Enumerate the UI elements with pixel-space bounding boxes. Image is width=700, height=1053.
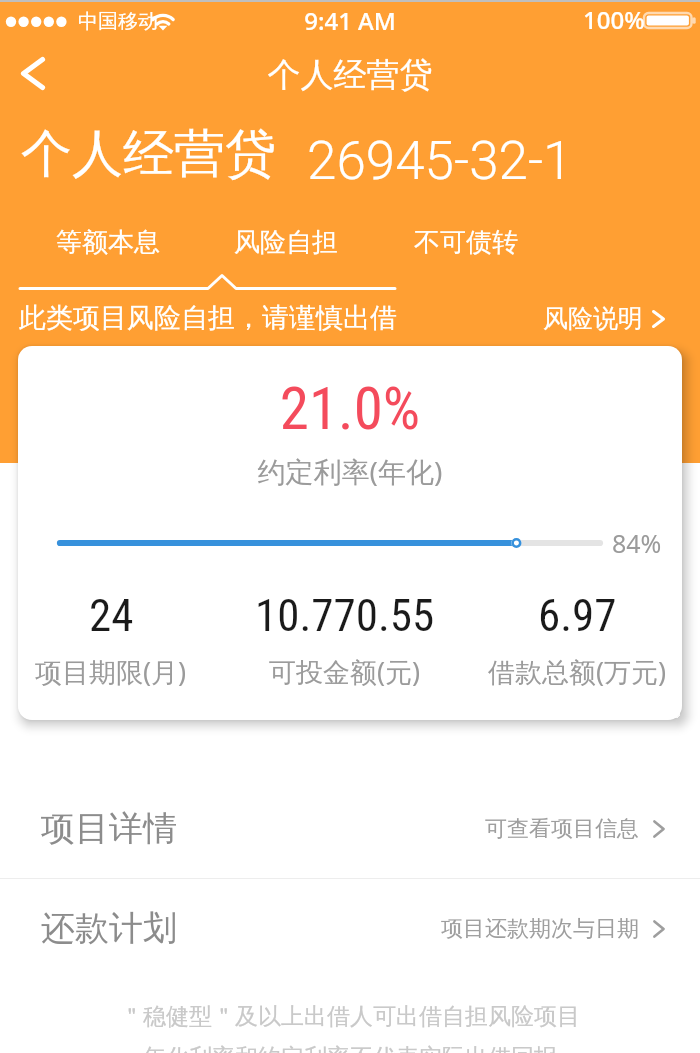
- staticText: 个人经营贷: [21, 122, 276, 186]
- staticText: 100%: [583, 3, 645, 36]
- staticText: 24: [89, 589, 134, 642]
- staticText: 中国移动: [78, 9, 158, 34]
- button[interactable]: 等额本息: [38, 216, 178, 268]
- staticText: 此类项目风险自担，请谨慎出借: [19, 301, 397, 335]
- staticText: 等额本息: [56, 226, 160, 259]
- staticText: 风险说明: [543, 303, 643, 334]
- staticText: 约定利率(年化): [0, 452, 700, 490]
- staticText: 21.0%: [0, 374, 700, 443]
- button[interactable]: 风险自担: [216, 216, 356, 268]
- button[interactable]: 风险说明: [531, 297, 677, 340]
- staticText: 还款计划: [41, 907, 177, 950]
- button[interactable]: 不可债转: [396, 216, 536, 268]
- staticText: 不可债转: [414, 226, 518, 259]
- staticText: ＂稳健型＂及以上出借人可出借自担风险项目: [0, 1002, 700, 1031]
- staticText: 9:41 AM: [0, 4, 700, 37]
- staticText: 借款总额(万元): [488, 653, 667, 690]
- staticText: 可查看项目信息: [485, 815, 639, 843]
- staticText: 风险自担: [234, 226, 338, 259]
- staticText: 84%: [612, 526, 662, 560]
- staticText: 个人经营贷: [0, 54, 700, 96]
- button[interactable]: 项目详情: [0, 779, 700, 878]
- staticText: 26945-32-1: [307, 130, 573, 192]
- staticText: 项目还款期次与日期: [441, 915, 639, 943]
- staticText: 项目期限(月): [35, 653, 187, 690]
- staticText: 6.97: [538, 589, 617, 642]
- button[interactable]: 还款计划: [0, 879, 700, 978]
- staticText: 可投金额(元): [269, 653, 421, 690]
- staticText: 项目详情: [41, 807, 177, 850]
- staticText: 年化利率和约定利率不代表实际出借回报: [0, 1043, 700, 1053]
- button[interactable]: Back: [0, 44, 66, 106]
- staticText: 10.770.55: [255, 589, 435, 642]
